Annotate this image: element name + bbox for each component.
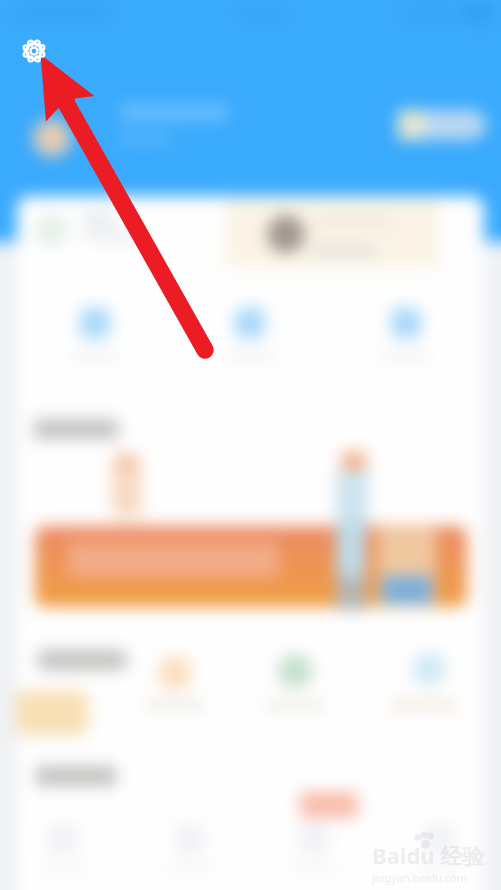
button[interactable] bbox=[398, 110, 486, 140]
button[interactable] bbox=[412, 652, 446, 686]
button[interactable] bbox=[225, 198, 440, 268]
button[interactable] bbox=[328, 308, 484, 361]
button[interactable] bbox=[17, 308, 172, 361]
button[interactable] bbox=[172, 308, 328, 361]
button[interactable] bbox=[0, 824, 126, 872]
staticText: Baidu 经验 bbox=[372, 840, 485, 870]
button[interactable]: Settings bbox=[21, 38, 47, 64]
staticText: jingyan.baidu.com bbox=[372, 870, 468, 885]
button[interactable] bbox=[278, 654, 312, 688]
button[interactable] bbox=[158, 656, 192, 690]
button[interactable] bbox=[376, 824, 501, 872]
button[interactable] bbox=[16, 691, 88, 735]
button[interactable] bbox=[251, 824, 376, 872]
button[interactable] bbox=[300, 792, 358, 818]
button[interactable] bbox=[126, 824, 251, 872]
button[interactable] bbox=[35, 526, 467, 607]
button[interactable] bbox=[33, 119, 71, 157]
